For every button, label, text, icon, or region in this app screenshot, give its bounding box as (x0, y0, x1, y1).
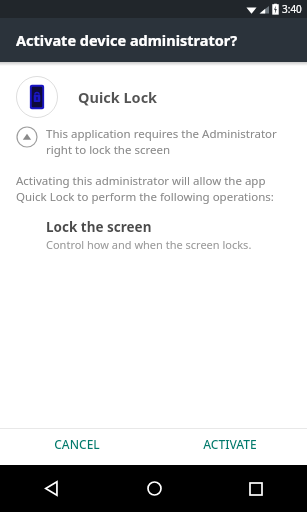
staticText: This application requires the Administra… (46, 126, 291, 157)
button[interactable]: Home (103, 465, 205, 512)
staticText: CANCEL (54, 436, 100, 452)
staticText: Lock the screen (46, 218, 152, 236)
button[interactable]: Collapse description (0, 124, 307, 159)
staticText: Quick Lock (78, 87, 158, 107)
button[interactable]: Recent apps (205, 465, 307, 512)
button[interactable]: ACTIVATE (153, 429, 307, 459)
button[interactable]: CANCEL (0, 429, 153, 459)
staticText: ACTIVATE (203, 436, 257, 452)
other: Collapse description (16, 126, 38, 148)
staticText: 3:40 (282, 2, 302, 16)
button[interactable]: Back (0, 465, 103, 512)
staticText: Activate device administrator? (16, 30, 238, 50)
staticText: Control how and when the screen locks. (46, 237, 252, 252)
staticText: Activating this administrator will allow… (16, 173, 292, 204)
